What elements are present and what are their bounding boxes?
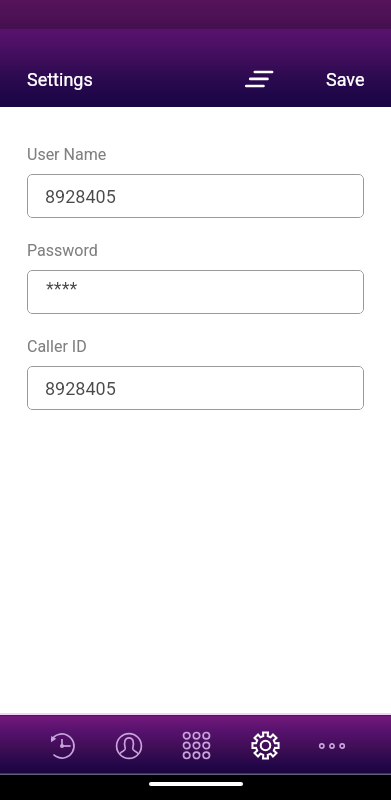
button[interactable]: Sort [236,58,280,100]
button[interactable]: **** [27,270,364,314]
staticText: Password [27,241,98,260]
staticText: Caller ID [27,337,87,356]
staticText: Settings [27,69,93,90]
button[interactable]: 8928405 [27,174,364,218]
button[interactable]: More [296,716,363,775]
button[interactable]: Settings [27,69,93,90]
button[interactable]: Contacts [95,716,162,775]
staticText: **** [46,278,78,299]
staticText: 8928405 [45,186,116,207]
staticText: User Name [27,145,107,164]
staticText: 8928405 [45,378,116,399]
button[interactable]: Save [326,69,365,90]
button[interactable]: Settings [229,716,296,775]
button[interactable]: History [28,716,95,775]
button[interactable]: Dialpad [162,716,229,775]
staticText: Save [326,69,365,90]
button[interactable]: 8928405 [27,366,364,410]
